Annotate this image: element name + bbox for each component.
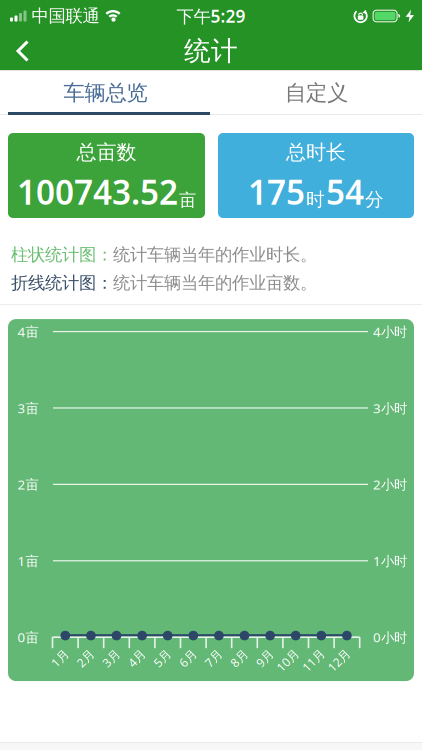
staticText: 12月 bbox=[326, 652, 352, 668]
staticText: 2亩 bbox=[17, 475, 38, 493]
staticText: 总时长 bbox=[286, 140, 346, 165]
staticText: 4亩 bbox=[17, 323, 38, 340]
staticText: 折线统计图： bbox=[11, 272, 113, 294]
staticText: 中国联通 bbox=[31, 5, 99, 27]
staticText: 11月 bbox=[300, 652, 326, 668]
button[interactable]: Back bbox=[0, 32, 30, 70]
staticText: 5月 bbox=[153, 650, 172, 666]
staticText: 柱状统计图： bbox=[11, 244, 113, 265]
staticText: 10月 bbox=[275, 652, 301, 668]
staticText: 6月 bbox=[178, 650, 197, 666]
staticText: 2月 bbox=[76, 650, 95, 666]
staticText: 3亩 bbox=[17, 399, 38, 417]
staticText: 4月 bbox=[127, 650, 146, 666]
staticText: 9月 bbox=[255, 650, 274, 666]
staticText: 统计车辆当年的作业时长。 bbox=[113, 244, 317, 265]
staticText: 100743.52 bbox=[17, 170, 178, 214]
staticText: 7月 bbox=[204, 650, 223, 666]
button[interactable]: 车辆总览 bbox=[0, 71, 211, 115]
staticText: 0亩 bbox=[17, 628, 38, 646]
staticText: 分 bbox=[365, 188, 384, 211]
staticText: 3月 bbox=[101, 650, 120, 666]
staticText: 1月 bbox=[50, 650, 69, 666]
staticText: 1亩 bbox=[17, 552, 38, 570]
staticText: 总亩数 bbox=[76, 140, 136, 165]
staticText: 1小时 bbox=[373, 552, 407, 570]
staticText: 下午5:29 bbox=[176, 4, 245, 27]
staticText: 8月 bbox=[229, 650, 248, 666]
staticText: 2小时 bbox=[373, 475, 407, 493]
staticText: 54 bbox=[326, 170, 364, 214]
staticText: 统计车辆当年的作业亩数。 bbox=[113, 272, 317, 294]
staticText: 4小时 bbox=[373, 323, 407, 340]
staticText: 车辆总览 bbox=[63, 80, 147, 106]
staticText: 3小时 bbox=[373, 399, 407, 417]
staticText: 亩 bbox=[179, 190, 196, 211]
staticText: 统计 bbox=[184, 35, 238, 67]
staticText: 时 bbox=[306, 188, 325, 211]
staticText: 0小时 bbox=[373, 628, 407, 646]
staticText: 175 bbox=[248, 170, 305, 214]
button[interactable]: 自定义 bbox=[211, 71, 422, 115]
staticText: 自定义 bbox=[285, 80, 348, 106]
